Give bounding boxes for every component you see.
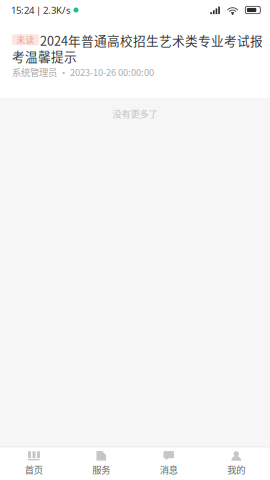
staticText: 首页 — [25, 463, 43, 476]
staticText: 服务 — [92, 463, 110, 476]
button[interactable]: 2024年普通高校招生艺术类专业考试报考温馨提示 — [0, 20, 270, 98]
staticText: 2024年普通高校招生艺术类专业考试报考温馨提示 — [12, 31, 263, 65]
button[interactable]: 我的 — [202, 447, 270, 480]
staticText: 没有更多了 — [112, 107, 157, 120]
staticText: 未读 — [16, 33, 34, 46]
staticText: 我的 — [227, 463, 245, 476]
button[interactable]: 服务 — [67, 447, 135, 480]
button[interactable]: 消息 — [135, 447, 202, 480]
staticText: 系统管理员 · 2023-10-26 00:00:00 — [12, 65, 154, 79]
button[interactable]: 首页 — [0, 447, 67, 480]
staticText: 消息 — [160, 463, 178, 476]
staticText: 15:24 | 2.3K/s — [11, 3, 71, 17]
